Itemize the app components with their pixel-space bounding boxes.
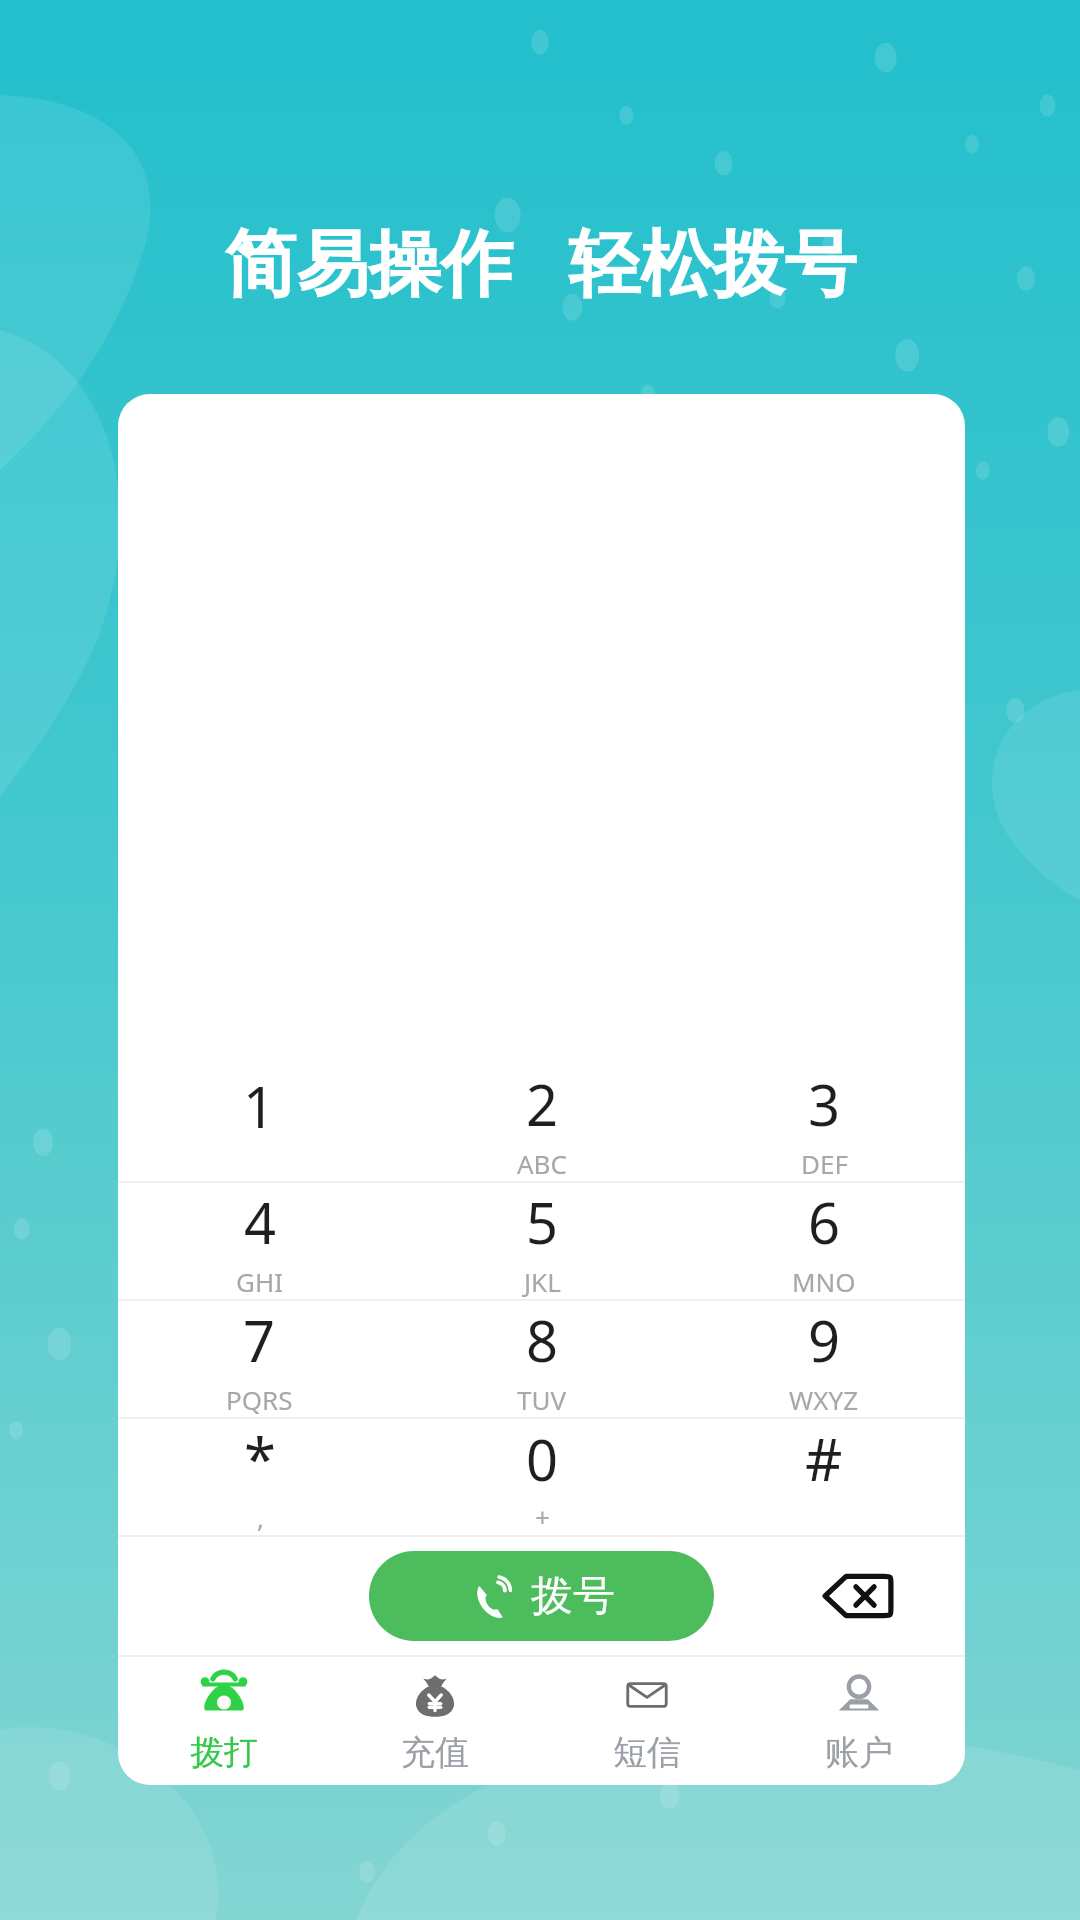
button[interactable]: * (118, 1419, 401, 1535)
staticText: 7 (243, 1302, 276, 1378)
button[interactable]: 4 (118, 1183, 401, 1299)
staticText: , (257, 1500, 264, 1535)
staticText: TUV (517, 1382, 567, 1417)
staticText: JKL (524, 1264, 561, 1299)
button[interactable]: 拨号 (369, 1551, 714, 1641)
staticText: 短信 (613, 1731, 681, 1774)
staticText: * (244, 1419, 276, 1498)
staticText: + (535, 1499, 550, 1534)
button[interactable]: 8 (401, 1301, 683, 1417)
staticText: 简易操作 轻松拨号 (224, 212, 857, 310)
staticText: 9 (808, 1302, 841, 1378)
button[interactable]: 5 (401, 1183, 683, 1299)
button[interactable]: # (683, 1419, 965, 1535)
button[interactable]: 拨打 (118, 1657, 329, 1785)
button[interactable]: 9 (683, 1301, 965, 1417)
button[interactable]: 2 (401, 1065, 683, 1181)
staticText: 2 (526, 1066, 559, 1142)
staticText: WXYZ (789, 1382, 859, 1417)
button[interactable]: 短信 (541, 1657, 753, 1785)
staticText: 0 (526, 1421, 559, 1497)
staticText: # (805, 1419, 843, 1498)
staticText: 6 (808, 1184, 841, 1260)
button[interactable]: 1 (118, 1065, 401, 1181)
staticText: 拨打 (190, 1731, 258, 1774)
staticText: GHI (236, 1264, 284, 1299)
button[interactable]: 7 (118, 1301, 401, 1417)
staticText: DEF (801, 1146, 848, 1181)
staticText: 3 (808, 1066, 841, 1142)
button[interactable]: 0 (401, 1419, 683, 1535)
staticText: 账户 (825, 1731, 893, 1774)
staticText: 1 (243, 1068, 276, 1144)
button[interactable]: 6 (683, 1183, 965, 1299)
button[interactable]: 3 (683, 1065, 965, 1181)
staticText: 5 (526, 1184, 559, 1260)
staticText: MNO (792, 1264, 856, 1299)
button[interactable]: 账户 (753, 1657, 965, 1785)
button[interactable]: 充值 (329, 1657, 541, 1785)
staticText: PQRS (226, 1382, 293, 1417)
staticText: 拨号 (531, 1570, 615, 1623)
staticText: ABC (517, 1146, 567, 1181)
staticText: 4 (244, 1184, 277, 1260)
staticText: 8 (526, 1302, 559, 1378)
button[interactable]: Backspace (811, 1549, 905, 1643)
staticText: 充值 (401, 1731, 469, 1774)
